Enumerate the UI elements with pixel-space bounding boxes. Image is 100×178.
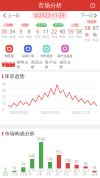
staticText: 108 xyxy=(65,159,71,162)
staticText: 16 xyxy=(12,166,16,170)
staticText: 16-20% xyxy=(46,169,53,176)
button[interactable]: 采购订单 xyxy=(19,45,37,58)
staticText: 商品分析 xyxy=(31,60,43,69)
button[interactable]: 销售分析 xyxy=(17,60,29,69)
staticText: 上一日 xyxy=(7,13,19,18)
button[interactable]: 退货单 xyxy=(33,23,50,39)
staticText: 2023-11-29 xyxy=(39,12,65,18)
staticText: 30 xyxy=(2,89,6,93)
staticText: 8 xyxy=(27,28,30,35)
button[interactable]: 销量 xyxy=(17,23,33,39)
button[interactable]: 市场概况 xyxy=(2,62,15,67)
staticText: AI产品推荐 xyxy=(58,54,73,58)
staticText: 客户分析 xyxy=(45,60,57,69)
staticText: 昨日 xyxy=(76,35,82,39)
staticText: 退货量 xyxy=(54,23,63,27)
staticText: 昨日 xyxy=(59,35,65,39)
staticText: 24-28% xyxy=(64,169,71,176)
staticText: 28-32% xyxy=(73,169,80,176)
staticText: 40 xyxy=(2,82,6,86)
staticText: 昨日 xyxy=(93,38,99,42)
staticText: 0 xyxy=(2,108,4,112)
button[interactable]: 销售退货 xyxy=(37,45,56,58)
staticText: 2023-09-07 xyxy=(10,111,28,115)
staticText: 59 xyxy=(68,28,74,35)
staticText: 采购订单 xyxy=(22,54,34,58)
staticText: 今日 xyxy=(68,35,74,39)
staticText: 销量 xyxy=(22,23,28,27)
staticText: 87 xyxy=(75,160,79,164)
staticText: <4% xyxy=(11,173,17,176)
staticText: 今日 xyxy=(51,35,57,39)
staticText: 10 xyxy=(2,102,6,106)
staticText: 昨日 xyxy=(9,35,15,39)
button[interactable]: 转化率 xyxy=(83,20,100,42)
staticText: 今日 xyxy=(84,38,90,42)
staticText: 12-16% xyxy=(38,169,45,176)
staticText: 6 xyxy=(36,28,39,35)
button[interactable]: 上一日 xyxy=(0,11,19,20)
staticText: 今日 xyxy=(18,35,24,39)
button[interactable]: 省区分析 xyxy=(59,60,71,69)
staticText: 542 xyxy=(29,154,35,158)
staticText: 销售分析 xyxy=(17,60,29,69)
staticText: 退货单 xyxy=(37,23,46,27)
staticText: 市场分析 xyxy=(38,2,62,9)
staticText: 30 xyxy=(1,28,7,35)
staticText: 79 xyxy=(21,163,25,167)
staticText: 库存趋势 xyxy=(5,73,25,79)
button[interactable]: AI产品推荐 xyxy=(56,45,74,58)
staticText: 销售额 xyxy=(5,54,14,58)
button[interactable]: 下一日 xyxy=(81,11,100,20)
staticText: 915 xyxy=(56,151,62,154)
staticText: 销售退货 xyxy=(40,54,52,58)
staticText: 订单数 xyxy=(4,23,13,27)
staticText: 人数 xyxy=(72,23,78,27)
staticText: 20 xyxy=(2,95,6,99)
staticText: 今日 xyxy=(1,35,7,39)
button[interactable]: 人数 xyxy=(67,23,83,39)
staticText: 40 xyxy=(84,162,88,166)
staticText: 4-8% xyxy=(20,173,27,176)
staticText: 2023-10-18 xyxy=(41,111,59,115)
staticText: 58 xyxy=(76,28,82,35)
staticText: 30 xyxy=(92,166,96,170)
staticText: 67% xyxy=(93,25,99,38)
staticText: 34 xyxy=(9,28,15,35)
staticText: 3100 xyxy=(37,138,45,141)
staticText: 转化率 xyxy=(87,20,96,24)
staticText: 11 xyxy=(43,28,49,35)
button[interactable]: 销售额 xyxy=(0,45,19,58)
button[interactable]: 2023-11-29 xyxy=(32,11,68,20)
button[interactable]: 客户分析 xyxy=(45,60,57,69)
staticText: 9 xyxy=(19,28,22,35)
staticText: 昨日 xyxy=(26,35,32,39)
staticText: 其他 xyxy=(2,173,8,176)
button[interactable]: 商品分析 xyxy=(31,60,43,69)
staticText: 22 xyxy=(51,28,57,35)
staticText: 其他 xyxy=(91,173,97,176)
staticText: 8-12% xyxy=(29,169,36,176)
staticText: 58% xyxy=(85,25,91,38)
staticText: 市场构成分析 xyxy=(5,131,35,137)
staticText: 32-36% xyxy=(82,169,89,176)
staticText: 8 xyxy=(4,167,6,171)
staticText: 昨日 xyxy=(43,35,49,39)
button[interactable]: History xyxy=(90,1,100,10)
staticText: 市场概况 xyxy=(2,60,14,69)
staticText: 下一日 xyxy=(81,13,93,18)
staticText: 今日 xyxy=(34,35,40,39)
button[interactable]: 订单数 xyxy=(0,23,17,39)
staticText: 140 xyxy=(47,158,53,161)
staticText: 省区分析 xyxy=(59,60,71,69)
staticText: 40 xyxy=(59,28,65,35)
staticText: 2023-11-29 xyxy=(72,111,90,115)
button[interactable]: 退货量 xyxy=(50,23,67,39)
staticText: 20-24% xyxy=(55,169,62,176)
